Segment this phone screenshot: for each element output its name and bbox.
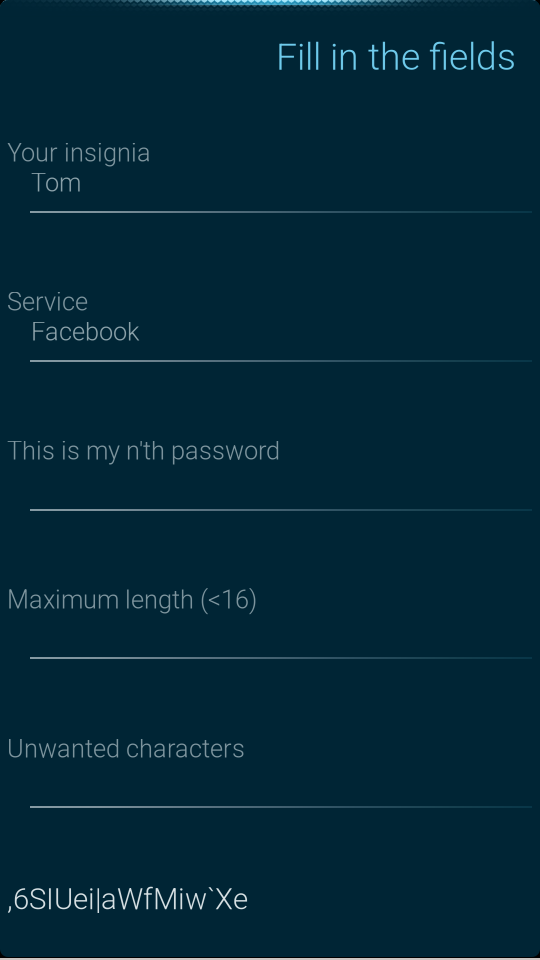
button[interactable]: This is my n'th password — [0, 436, 540, 585]
button[interactable]: Your insignia — [0, 138, 540, 287]
staticText: Unwanted characters — [7, 734, 245, 764]
button[interactable]: Maximum length (<16) — [0, 585, 540, 734]
staticText: Fill in the fields — [276, 35, 516, 79]
staticText: Service — [7, 287, 88, 317]
button[interactable]: Unwanted characters — [0, 734, 540, 883]
staticText: Tom — [31, 168, 81, 198]
staticText: Your insignia — [7, 138, 151, 168]
button[interactable]: Service — [0, 287, 540, 436]
staticText: This is my n'th password — [7, 436, 280, 466]
staticText: ,6SIUei|aWfMiw`Xe — [7, 882, 248, 916]
staticText: Facebook — [31, 317, 139, 347]
staticText: Maximum length (<16) — [7, 585, 257, 615]
